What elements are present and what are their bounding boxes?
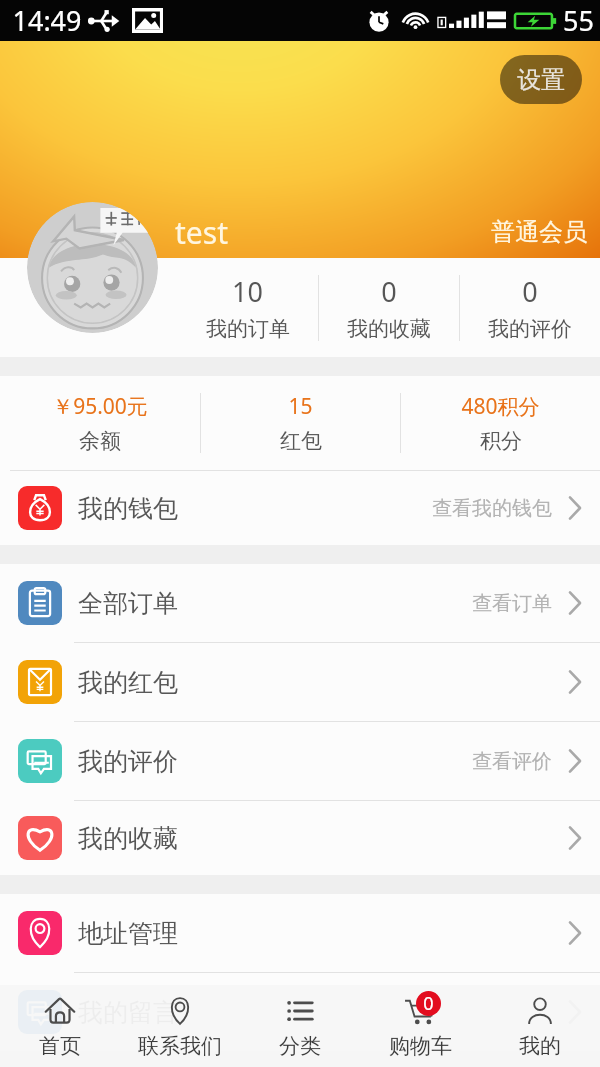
button[interactable]: 我的评价 <box>0 722 600 800</box>
staticText: 我的 <box>519 1033 561 1059</box>
button[interactable]: Avatar <box>27 202 158 333</box>
staticText: 设置 <box>517 65 565 95</box>
button[interactable]: 我的留言 <box>0 973 600 1051</box>
button[interactable]: 我的红包 <box>0 643 600 721</box>
button[interactable]: 0 <box>460 273 600 342</box>
staticText: 我的留言 <box>78 997 178 1028</box>
button[interactable]: 联系我们 <box>120 994 240 1059</box>
staticText: ￥95.00元 <box>52 392 148 421</box>
button[interactable]: 0 <box>319 273 459 342</box>
staticText: 余额 <box>79 428 121 454</box>
staticText: 普通会员 <box>491 217 587 247</box>
staticText: 地址管理 <box>78 918 178 949</box>
staticText: 我的评价 <box>488 316 572 342</box>
staticText: 0 <box>423 991 434 1016</box>
staticText: 55 <box>563 2 594 39</box>
staticText: 购物车 <box>389 1033 452 1059</box>
staticText: 全部订单 <box>78 588 178 619</box>
staticText: 查看评价 <box>472 749 552 774</box>
button[interactable]: 10 <box>177 273 318 342</box>
button[interactable]: 我的钱包 <box>0 471 600 545</box>
button[interactable]: 分类 <box>240 994 360 1059</box>
staticText: 0 <box>381 273 397 310</box>
staticText: 分类 <box>279 1033 321 1059</box>
staticText: 我的订单 <box>206 316 290 342</box>
staticText: test <box>175 212 228 253</box>
button[interactable]: 我的 <box>480 994 600 1059</box>
staticText: 首页 <box>39 1033 81 1059</box>
staticText: 红包 <box>280 428 322 454</box>
staticText: 查看我的钱包 <box>432 496 552 521</box>
button[interactable]: 480积分 <box>401 392 600 454</box>
staticText: 我的钱包 <box>78 493 178 524</box>
staticText: 10 <box>232 273 263 310</box>
staticText: 查看订单 <box>472 591 552 616</box>
staticText: 我的收藏 <box>347 316 431 342</box>
staticText: 480积分 <box>461 392 540 421</box>
staticText: 14:49 <box>12 2 82 39</box>
button[interactable]: ￥95.00元 <box>0 392 200 454</box>
button[interactable]: 设置 <box>500 55 582 104</box>
button[interactable]: 地址管理 <box>0 894 600 972</box>
staticText: 15 <box>288 392 313 421</box>
staticText: 我的评价 <box>78 746 178 777</box>
button[interactable]: 我的收藏 <box>0 801 600 875</box>
staticText: 我的红包 <box>78 667 178 698</box>
button[interactable]: 0 <box>360 994 480 1059</box>
staticText: 联系我们 <box>138 1033 222 1059</box>
button[interactable]: 首页 <box>0 994 120 1059</box>
button[interactable]: 15 <box>201 392 400 454</box>
staticText: 积分 <box>480 428 522 454</box>
staticText: 我的收藏 <box>78 823 178 854</box>
staticText: 0 <box>522 273 538 310</box>
button[interactable]: 全部订单 <box>0 564 600 642</box>
